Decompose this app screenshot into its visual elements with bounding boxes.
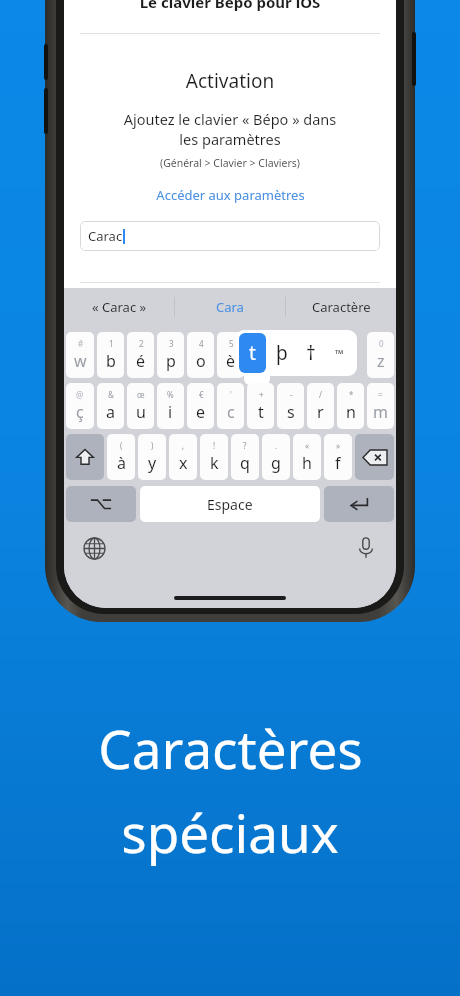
staticText: y <box>148 452 157 474</box>
button[interactable]: Accéder aux paramètres <box>64 186 396 204</box>
button[interactable]: * <box>337 383 364 429</box>
staticText: « <box>305 440 310 451</box>
staticText: * <box>349 389 354 400</box>
staticText: 0 <box>379 338 384 349</box>
button[interactable]: # <box>66 332 94 378</box>
staticText: Accéder aux paramètres <box>156 186 305 204</box>
button[interactable]: % <box>157 383 184 429</box>
staticText: € <box>199 389 204 400</box>
button[interactable]: « <box>293 434 321 480</box>
button[interactable]: » <box>324 434 352 480</box>
button[interactable] <box>277 332 304 378</box>
button[interactable]: + <box>247 383 274 429</box>
staticText: » <box>336 440 341 451</box>
button[interactable] <box>337 332 364 378</box>
button[interactable]: Cara <box>175 288 285 326</box>
staticText: à <box>117 452 126 474</box>
button[interactable]: € <box>187 383 214 429</box>
staticText: + <box>259 389 264 400</box>
button[interactable]: † <box>297 333 324 373</box>
button[interactable]: Backspace <box>355 434 394 480</box>
staticText: 2 <box>139 338 144 349</box>
button[interactable]: & <box>97 383 124 429</box>
staticText: œ <box>137 389 145 400</box>
staticText: r <box>317 401 324 423</box>
staticText: ™ <box>335 346 344 361</box>
button[interactable]: ™ <box>326 333 353 373</box>
staticText: t <box>249 340 256 366</box>
staticText: p <box>166 350 176 372</box>
button[interactable]: Return <box>324 486 394 522</box>
staticText: - <box>290 389 293 400</box>
button[interactable]: Espace <box>140 486 320 522</box>
staticText: e <box>196 401 206 423</box>
button[interactable]: - <box>277 383 304 429</box>
other: Power <box>412 32 416 86</box>
button[interactable]: 2 <box>127 332 154 378</box>
staticText: = <box>378 389 383 400</box>
button[interactable]: Option <box>66 486 136 522</box>
button[interactable]: Carac <box>80 221 380 251</box>
staticText: Espace <box>207 495 253 514</box>
staticText: (Général > Clavier > Claviers) <box>64 156 396 170</box>
staticText: Caractère <box>312 298 371 316</box>
button[interactable] <box>247 332 274 378</box>
other: Volume up <box>44 44 48 80</box>
staticText: 1 <box>109 338 114 349</box>
staticText: ' <box>230 389 232 400</box>
button[interactable]: 4 <box>187 332 214 378</box>
staticText: Activation <box>64 68 396 94</box>
staticText: 3 <box>169 338 174 349</box>
staticText: @ <box>76 389 84 400</box>
staticText: o <box>196 350 206 372</box>
button[interactable]: ) <box>138 434 166 480</box>
button[interactable] <box>307 332 334 378</box>
staticText: % <box>167 389 174 400</box>
staticText: s <box>287 401 295 423</box>
staticText: Cara <box>216 298 244 316</box>
button[interactable]: 1 <box>97 332 124 378</box>
staticText: h <box>302 452 312 474</box>
staticText: 4 <box>199 338 204 349</box>
staticText: « Carac » <box>92 298 147 316</box>
button[interactable]: Dictation <box>350 532 382 564</box>
button[interactable]: , <box>169 434 197 480</box>
button[interactable]: ' <box>217 383 244 429</box>
button[interactable]: = <box>367 383 394 429</box>
staticText: n <box>346 401 356 423</box>
button[interactable]: Caractère <box>286 288 396 326</box>
staticText: a <box>106 401 115 423</box>
button[interactable]: / <box>307 383 334 429</box>
staticText: . <box>275 440 278 451</box>
staticText: spéciaux <box>121 796 339 868</box>
button[interactable]: . <box>262 434 290 480</box>
staticText: þ <box>276 340 288 366</box>
staticText: 5 <box>229 338 234 349</box>
button[interactable]: Shift <box>66 434 104 480</box>
staticText: ç <box>76 401 84 423</box>
staticText: u <box>136 401 146 423</box>
button[interactable]: @ <box>66 383 94 429</box>
staticText: / <box>319 389 322 400</box>
button[interactable]: t <box>239 333 266 373</box>
button[interactable]: ( <box>107 434 135 480</box>
staticText: f <box>335 452 341 474</box>
staticText: Caractères <box>98 712 363 784</box>
staticText: z <box>377 350 385 372</box>
staticText: ! <box>213 440 216 451</box>
button[interactable]: Change keyboard <box>78 532 110 564</box>
staticText: w <box>74 350 87 372</box>
button[interactable]: 3 <box>157 332 184 378</box>
button[interactable]: œ <box>127 383 154 429</box>
staticText: x <box>179 452 188 474</box>
button[interactable]: ! <box>200 434 228 480</box>
staticText: t <box>258 401 264 423</box>
staticText: ) <box>151 440 154 451</box>
button[interactable]: ? <box>231 434 259 480</box>
button[interactable]: « Carac » <box>64 288 174 326</box>
button[interactable]: 0 <box>367 332 394 378</box>
staticText: q <box>240 452 250 474</box>
button[interactable]: þ <box>268 333 295 373</box>
button[interactable]: 5 <box>217 332 244 378</box>
staticText: g <box>271 452 281 474</box>
